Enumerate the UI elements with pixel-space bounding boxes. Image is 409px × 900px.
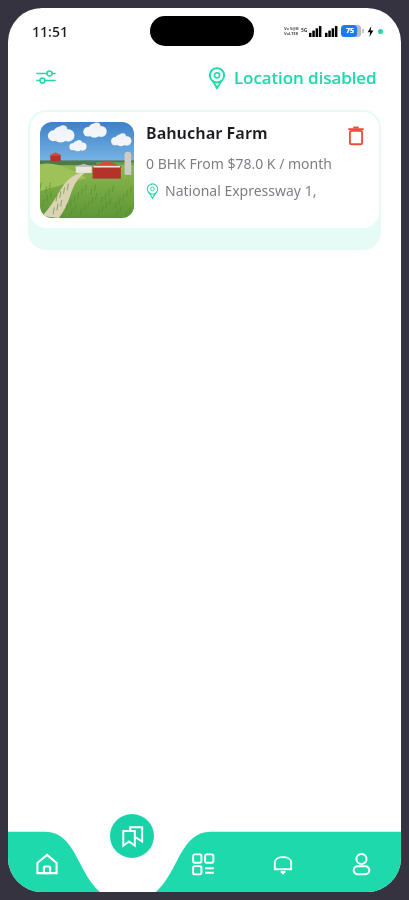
staticText: Location disabled — [234, 66, 377, 89]
button[interactable]: Bahuchar Farm — [30, 112, 379, 228]
staticText: 75 — [346, 26, 355, 36]
button[interactable]: Notifications — [243, 836, 322, 892]
staticText: National Expressway 1, — [165, 181, 317, 200]
button[interactable]: Home — [8, 836, 86, 892]
staticText: VoLTE8 — [284, 31, 299, 36]
button[interactable]: Bookmarks — [110, 814, 154, 858]
staticText: Vo 5@B — [284, 26, 299, 31]
button[interactable]: Filter — [30, 61, 62, 93]
button[interactable]: Location disabled — [204, 62, 381, 93]
staticText: 11:51 — [32, 22, 68, 41]
button[interactable]: Categories — [164, 836, 243, 892]
button[interactable]: Delete — [343, 122, 369, 148]
staticText: Bahuchar Farm — [146, 122, 343, 144]
staticText: 0 BHK From $78.0 K / month — [146, 154, 332, 173]
button[interactable]: Profile — [322, 836, 401, 892]
staticText: 5G — [301, 27, 308, 34]
